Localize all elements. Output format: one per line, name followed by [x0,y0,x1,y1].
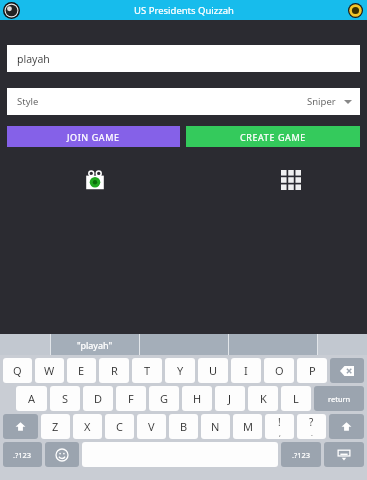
button[interactable]: Gift [84,169,106,191]
staticText: Q [13,363,22,378]
button[interactable]: Z [41,414,70,439]
staticText: S [62,391,69,406]
button[interactable]: Backspace [330,358,364,383]
staticText: Y [177,363,184,378]
staticText: G [160,391,169,406]
button[interactable]: JOIN GAME [7,126,180,147]
staticText: ? [309,415,314,429]
button[interactable]: O [264,358,294,383]
button[interactable]: A [16,386,47,411]
staticText: H [193,391,202,406]
button[interactable]: Profile [3,2,20,19]
button[interactable]: playah [7,45,360,72]
staticText: J [228,391,232,406]
button[interactable]: Emoji [45,442,79,467]
staticText: playah [17,52,50,66]
button[interactable]: H [182,386,212,411]
button[interactable]: Style [7,88,360,115]
staticText: O [275,363,284,378]
button[interactable]: Grid menu [281,170,301,190]
staticText: L [293,391,299,406]
button[interactable]: Shift [3,414,38,439]
button[interactable]: Y [165,358,195,383]
staticText: X [84,419,91,434]
button[interactable]: P [297,358,327,383]
staticText: return [328,394,351,404]
staticText: .?123 [13,450,32,460]
staticText: R [111,363,118,378]
button[interactable]: B [169,414,198,439]
button[interactable]: W [35,358,64,383]
button[interactable]: Account [348,3,363,18]
button[interactable]: .?123 [281,442,321,467]
button[interactable]: J [215,386,245,411]
button[interactable]: ? [297,414,326,439]
button[interactable]: "playah" [51,334,139,355]
staticText: C [116,419,123,434]
button[interactable]: F [116,386,146,411]
staticText: .?123 [292,450,311,460]
staticText: I [244,363,248,378]
staticText: JOIN GAME [67,131,120,143]
staticText: M [243,419,253,434]
staticText: T [144,363,151,378]
button[interactable]: U [198,358,228,383]
staticText: K [260,391,267,406]
staticText: Style [17,95,39,108]
button[interactable]: E [67,358,96,383]
staticText: V [148,419,155,434]
button[interactable]: return [314,386,364,411]
staticText: B [180,419,188,434]
staticText: E [78,363,85,378]
button[interactable]: R [99,358,129,383]
button[interactable]: X [73,414,102,439]
staticText: CREATE GAME [240,131,306,143]
button[interactable]: Hide keyboard [324,442,364,467]
staticText: N [211,419,220,434]
button[interactable]: K [248,386,278,411]
button[interactable]: I [231,358,261,383]
button[interactable]: V [137,414,166,439]
button[interactable]: T [132,358,162,383]
staticText: U [209,363,218,378]
staticText: ! [278,415,281,429]
button[interactable]: CREATE GAME [186,126,360,147]
staticText: W [44,363,55,378]
button[interactable]: N [201,414,230,439]
button[interactable]: D [83,386,113,411]
staticText: D [94,391,103,406]
button[interactable]: Shift [329,414,364,439]
button[interactable]: S [50,386,80,411]
button[interactable]: L [281,386,311,411]
staticText: F [128,391,134,406]
button[interactable]: ! [265,414,294,439]
button[interactable]: G [149,386,179,411]
staticText: , [279,429,281,439]
button[interactable]: M [233,414,262,439]
staticText: P [309,363,316,378]
button[interactable]: .?123 [3,442,42,467]
staticText: Z [52,419,59,434]
staticText: A [28,391,36,406]
staticText: "playah" [77,339,113,351]
button[interactable]: C [105,414,134,439]
staticText: US Presidents Quizzah [134,4,234,17]
staticText: Sniper [307,95,336,108]
staticText: . [311,429,313,439]
button[interactable]: Q [3,358,32,383]
